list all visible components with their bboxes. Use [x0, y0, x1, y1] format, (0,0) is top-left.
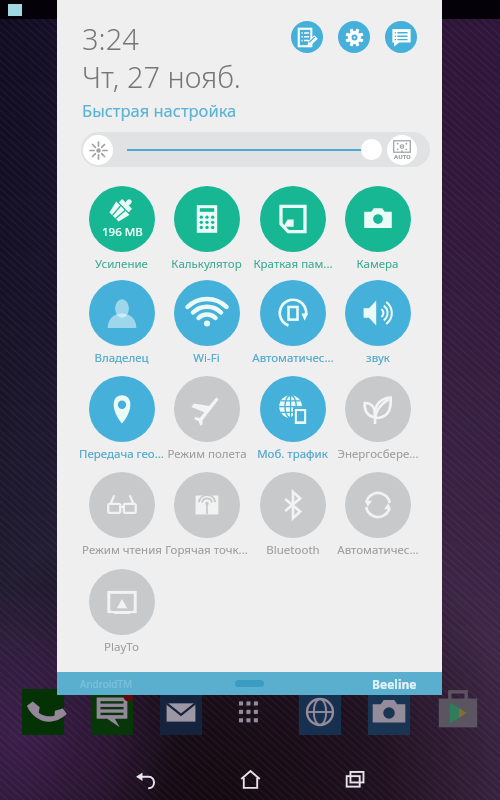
button[interactable]: Владелец	[79, 280, 164, 362]
button[interactable]: Home	[240, 769, 261, 790]
staticText: AUTO	[394, 153, 411, 161]
staticText: PlayTo	[104, 639, 139, 655]
staticText: Wi-Fi	[193, 350, 220, 366]
button[interactable]: Beeline	[57, 672, 442, 695]
staticText: Чт, 27 нояб.	[82, 57, 241, 96]
staticText: Энергосбере...	[337, 446, 419, 462]
button[interactable]: Phone	[19, 688, 67, 736]
staticText: 3:24	[82, 19, 139, 58]
staticText: Передача гео...	[79, 446, 164, 462]
button[interactable]: Краткая пам...	[250, 186, 335, 268]
button[interactable]: Brightness	[83, 135, 113, 165]
staticText: AndroidTM	[80, 677, 133, 691]
staticText: Beeline	[372, 676, 417, 692]
staticText: Автоматичес...	[337, 542, 419, 558]
button[interactable]: Email	[157, 688, 205, 736]
staticText: Автоматичес...	[252, 350, 334, 366]
button[interactable]: звук	[335, 280, 420, 362]
button[interactable]: Back	[135, 769, 157, 791]
button[interactable]: Режим полета	[164, 376, 249, 458]
staticText: Горячая точк...	[165, 542, 248, 558]
staticText: Быстрая настройка	[82, 99, 237, 121]
button[interactable]: Энергосбере...	[335, 376, 420, 458]
staticText: 196 MB	[102, 224, 143, 240]
button[interactable]: Edit quick settings	[291, 21, 323, 53]
button[interactable]: Play Store	[434, 688, 482, 736]
button[interactable]: Camera	[365, 688, 413, 736]
staticText: Bluetooth	[266, 542, 320, 558]
button[interactable]: Передача гео...	[79, 376, 164, 458]
button[interactable]: Моб. трафик	[250, 376, 335, 458]
staticText: Режим чтения	[82, 542, 162, 558]
button[interactable]: Recents	[345, 769, 366, 790]
staticText: Калькулятор	[171, 256, 242, 272]
staticText: Краткая пам...	[253, 256, 333, 272]
button[interactable]: Browser	[296, 688, 344, 736]
button[interactable]: Settings	[338, 21, 370, 53]
button[interactable]: Автоматичес...	[335, 472, 420, 554]
staticText: звук	[366, 350, 390, 366]
button[interactable]: Режим чтения	[79, 472, 164, 554]
staticText: Усиление	[95, 256, 148, 272]
staticText: Камера	[356, 256, 399, 272]
button[interactable]: Автоматичес...	[250, 280, 335, 362]
button[interactable]: 196 MB	[79, 186, 164, 268]
staticText: Моб. трафик	[257, 446, 328, 462]
button[interactable]: Калькулятор	[164, 186, 249, 268]
button[interactable]: Notifications	[385, 21, 417, 53]
staticText: Режим полета	[167, 446, 247, 462]
button[interactable]: PlayTo	[79, 569, 164, 651]
button[interactable]: Wi-Fi	[164, 280, 249, 362]
button[interactable]: Apps	[226, 688, 274, 736]
button[interactable]: Bluetooth	[250, 472, 335, 554]
button[interactable]: Камера	[335, 186, 420, 268]
button[interactable]: Auto brightness	[387, 135, 417, 165]
button[interactable]: Горячая точк...	[164, 472, 249, 554]
staticText: Владелец	[94, 350, 149, 366]
button[interactable]: Messages	[88, 688, 136, 736]
